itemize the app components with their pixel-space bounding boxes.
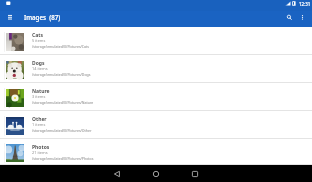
staticText: /storage/emulated/0/Pictures/Nature xyxy=(32,100,312,105)
staticText: Other xyxy=(32,116,47,123)
button[interactable]: Search xyxy=(281,11,297,27)
staticText: /storage/emulated/0/Pictures/Cats xyxy=(32,44,312,49)
staticText: 3 items xyxy=(32,94,46,99)
button[interactable]: Navigation menu xyxy=(0,11,20,27)
staticText: 5 items xyxy=(32,38,46,43)
staticText: 14 items xyxy=(32,66,48,71)
staticText: Nature xyxy=(32,88,50,95)
button[interactable]: Dogs xyxy=(0,55,312,83)
button[interactable]: Nature xyxy=(0,83,312,111)
staticText: 1 items xyxy=(32,122,46,127)
staticText: Dogs xyxy=(32,60,45,67)
staticText: /storage/emulated/0/Pictures/Dogs xyxy=(32,72,312,77)
staticText: 21 items xyxy=(32,150,48,155)
button[interactable]: More options xyxy=(295,11,309,27)
staticText: Cats xyxy=(32,32,43,39)
button[interactable]: Photos xyxy=(0,139,312,165)
staticText: /storage/emulated/0/Pictures/Photos xyxy=(32,156,312,161)
button[interactable]: Other xyxy=(0,111,312,139)
staticText: 12:31 xyxy=(299,1,311,7)
staticText: Photos xyxy=(32,144,50,151)
staticText: /storage/emulated/0/Pictures/Other xyxy=(32,128,312,133)
staticText: Images (87) xyxy=(24,13,61,21)
button[interactable]: Cats xyxy=(0,27,312,55)
